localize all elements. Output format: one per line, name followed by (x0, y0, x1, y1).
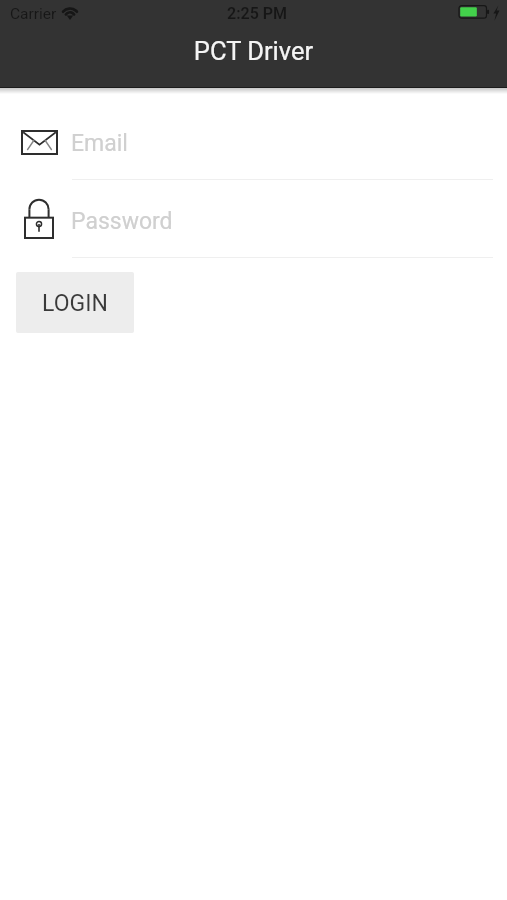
other: Wi-Fi signal (61, 4, 79, 19)
other: Battery charging (458, 3, 503, 20)
staticText: LOGIN (42, 290, 108, 317)
staticText: 2:25 PM (227, 4, 288, 23)
button[interactable]: LOGIN (16, 272, 134, 333)
staticText: Email (71, 130, 128, 157)
button[interactable]: Password (72, 198, 493, 258)
other: Email (21, 130, 58, 155)
staticText: PCT Driver (0, 36, 507, 66)
staticText: Carrier (10, 5, 57, 23)
other: Password (24, 198, 54, 239)
staticText: Password (71, 208, 173, 235)
button[interactable]: Email (72, 120, 493, 180)
